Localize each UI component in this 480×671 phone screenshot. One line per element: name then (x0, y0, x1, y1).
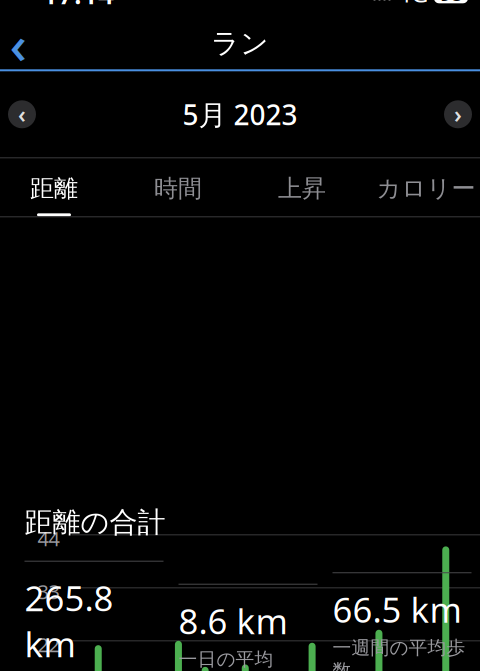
staticText: 距離 (30, 174, 78, 203)
staticText: 265.8 km (24, 575, 113, 667)
staticText: 距離の合計 (24, 505, 165, 540)
staticText: ‹ (18, 99, 26, 129)
staticText: 一日の平均 (178, 648, 273, 671)
staticText: 時間 (154, 174, 202, 203)
staticText: 8.6 km (178, 598, 287, 644)
staticText: › (454, 99, 462, 129)
staticText: 22 (37, 631, 59, 658)
button[interactable]: 距離 (0, 158, 114, 216)
staticText: カロリー (376, 174, 475, 203)
button[interactable]: カロリー (366, 158, 480, 216)
staticText: ラン (211, 26, 269, 60)
button[interactable]: 時間 (118, 158, 238, 216)
staticText: 5月 2023 (182, 96, 297, 133)
button[interactable]: 戻る (0, 21, 40, 65)
staticText: 33 (37, 578, 59, 605)
staticText: 98 (440, 0, 462, 7)
staticText: 44 (37, 525, 59, 552)
staticText: 66.5 km (332, 586, 461, 632)
button[interactable]: 次の月 (444, 100, 472, 128)
button[interactable]: 上昇 (242, 158, 362, 216)
button[interactable]: 前の月 (8, 100, 36, 128)
staticText: 上昇 (278, 174, 326, 203)
staticText: 17:14 (42, 0, 114, 12)
staticText: 一週間の平均歩数 (332, 636, 465, 671)
staticText: 4G (397, 0, 428, 9)
staticText: ‹ (9, 8, 26, 79)
